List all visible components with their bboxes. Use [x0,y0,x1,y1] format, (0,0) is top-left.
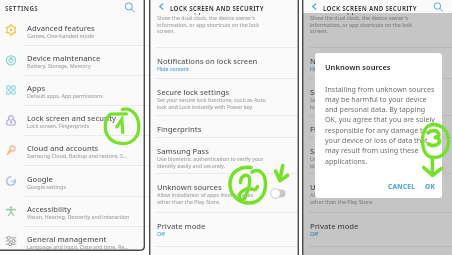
button[interactable]: Info and app shortcuts [302,0,452,48]
staticText: Notifications on lock screen [157,56,258,66]
staticText: Apps [27,83,46,93]
staticText: Set your secure lock functions, such as … [157,96,266,103]
button[interactable]: CANCEL [385,179,419,194]
button[interactable]: Info and app shortcuts [149,0,299,48]
staticText: Lock screen and security [27,113,117,123]
staticText: Default apps, App permissions [27,92,103,99]
staticText: Google [27,174,53,184]
button[interactable]: Secure startup [302,246,452,255]
staticText: may result from using these [325,145,419,155]
staticText: Info and app shortcuts [157,5,240,15]
staticText: OK [425,182,436,191]
staticText: Off [157,230,165,237]
button[interactable]: Notifications on lock screen [149,47,299,78]
staticText: information, or app shortcuts on the loc… [310,21,413,28]
staticText: Cloud and accounts [27,143,99,153]
staticText: Vision, Hearing, Dexterity and interacti… [27,213,130,220]
button[interactable]: Samsung Pass [302,137,452,172]
staticText: identity easily and securely. [310,162,379,169]
staticText: General management [27,234,107,244]
staticText: Private mode [157,221,206,231]
staticText: Info and app shortcuts [310,5,393,15]
button[interactable]: Unknown sources toggle [270,188,287,199]
staticText: identity easily and securely. [157,162,226,169]
button[interactable]: Navigate back [157,2,166,11]
button[interactable]: Fingerprints [302,115,452,138]
staticText: Set your secure lock functions, such as … [310,96,419,103]
button[interactable]: OK [422,179,439,194]
staticText: OK, you agree that you are solely [325,114,435,124]
button[interactable]: Private mode [302,212,452,247]
staticText: Google settings [27,183,67,190]
staticText: Lock screen, Fingerprints [27,122,90,129]
button[interactable]: Fingerprints [149,115,299,138]
staticText: Off [310,230,318,237]
staticText: Advanced features [27,23,95,33]
staticText: Allow installation of apps from sources [310,191,407,198]
staticText: Hide content [310,65,343,72]
staticText: Unknown sources [157,182,222,192]
button[interactable]: General management [0,226,145,255]
staticText: CANCEL [388,182,416,191]
staticText: screen. [157,27,175,34]
staticText: Private mode [310,221,359,231]
staticText: Show the dual clock, the device owner's [310,14,409,21]
button[interactable]: Advanced features [0,15,145,45]
staticText: other than the Play Store. [157,198,221,205]
button[interactable]: Search [432,1,444,13]
staticText: screen. [310,27,328,34]
staticText: other than the Play Store. [310,198,374,205]
button[interactable]: Accessibility [0,196,145,226]
button[interactable]: Private mode [149,212,299,247]
staticText: Secure lock settings [157,87,230,97]
staticText: applications. [325,156,368,166]
staticText: Secure lock settings [310,87,383,97]
button[interactable]: Secure lock settings [149,78,299,115]
button[interactable]: Secure lock settings [302,78,452,115]
staticText: your device or loss of data that [325,135,428,145]
button[interactable]: Unknown sources [302,173,452,212]
staticText: Use biometric authentication to verify y… [157,155,264,162]
button[interactable]: Device maintenance [0,45,145,75]
staticText: Games, One-handed mode [27,32,95,39]
staticText: Samsung Pass [157,146,209,156]
button[interactable]: Search [123,1,136,14]
staticText: Accessibility [27,204,71,214]
staticText: Notifications on lock screen [310,56,411,66]
staticText: Installing from unknown sources [325,84,435,94]
staticText: Battery, Storage, Memory [27,62,91,69]
staticText: Hide content [157,65,190,72]
staticText: may be harmful to your device [325,94,427,104]
button[interactable]: Google [0,166,145,196]
staticText: lock and Lock instantly with Power key. [157,103,254,110]
staticText: Unknown sources [310,182,375,192]
staticText: responsible for any damage to [325,125,427,135]
button[interactable]: Apps [0,75,145,105]
staticText: SETTINGS [5,4,39,13]
staticText: Samsung Cloud, Backup and restore, S... [27,152,128,159]
staticText: Fingerprints [157,124,202,134]
button[interactable]: Lock screen and security [0,105,145,135]
button[interactable]: Cloud and accounts [0,135,145,165]
staticText: Allow installation of apps from sources [157,191,254,198]
button[interactable]: Secure startup [149,246,299,255]
staticText: and personal data. By tapping [325,104,426,114]
staticText: lock and Lock instantly with Power key. [310,103,407,110]
staticText: LOCK SCREEN AND SECURITY [170,4,264,12]
staticText: Unknown sources [325,62,391,72]
staticText: information, or app shortcuts on the loc… [157,21,260,28]
button[interactable]: Samsung Pass [149,137,299,172]
button[interactable]: Notifications on lock screen [302,47,452,78]
staticText: Language and input, Date and time, Re... [27,243,129,250]
staticText: Use biometric authentication to verify y… [310,155,417,162]
staticText: Fingerprints [310,124,355,134]
staticText: Show the dual clock, the device owner's [157,14,256,21]
button[interactable]: Navigate back [310,2,319,11]
staticText: LOCK SCREEN AND SECURITY [323,4,417,12]
button[interactable]: Unknown sources [149,173,299,212]
staticText: Device maintenance [27,53,101,63]
staticText: Samsung Pass [310,146,362,156]
